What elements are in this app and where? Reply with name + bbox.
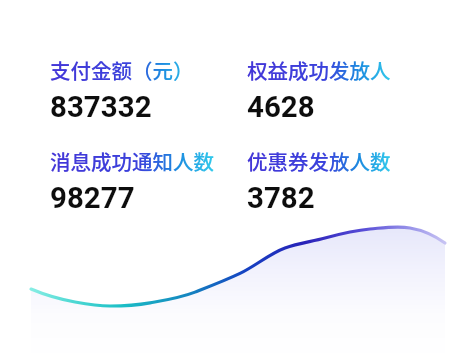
staticText: 优惠券发放人数 <box>247 146 391 176</box>
staticText: 98277 <box>50 181 135 216</box>
staticText: 3782 <box>247 181 315 216</box>
staticText: 支付金额（元） <box>50 55 194 85</box>
staticText: 4628 <box>247 90 315 125</box>
staticText: 837332 <box>50 90 152 125</box>
staticText: 权益成功发放人 <box>247 55 391 85</box>
staticText: 消息成功通知人数 <box>50 146 214 176</box>
